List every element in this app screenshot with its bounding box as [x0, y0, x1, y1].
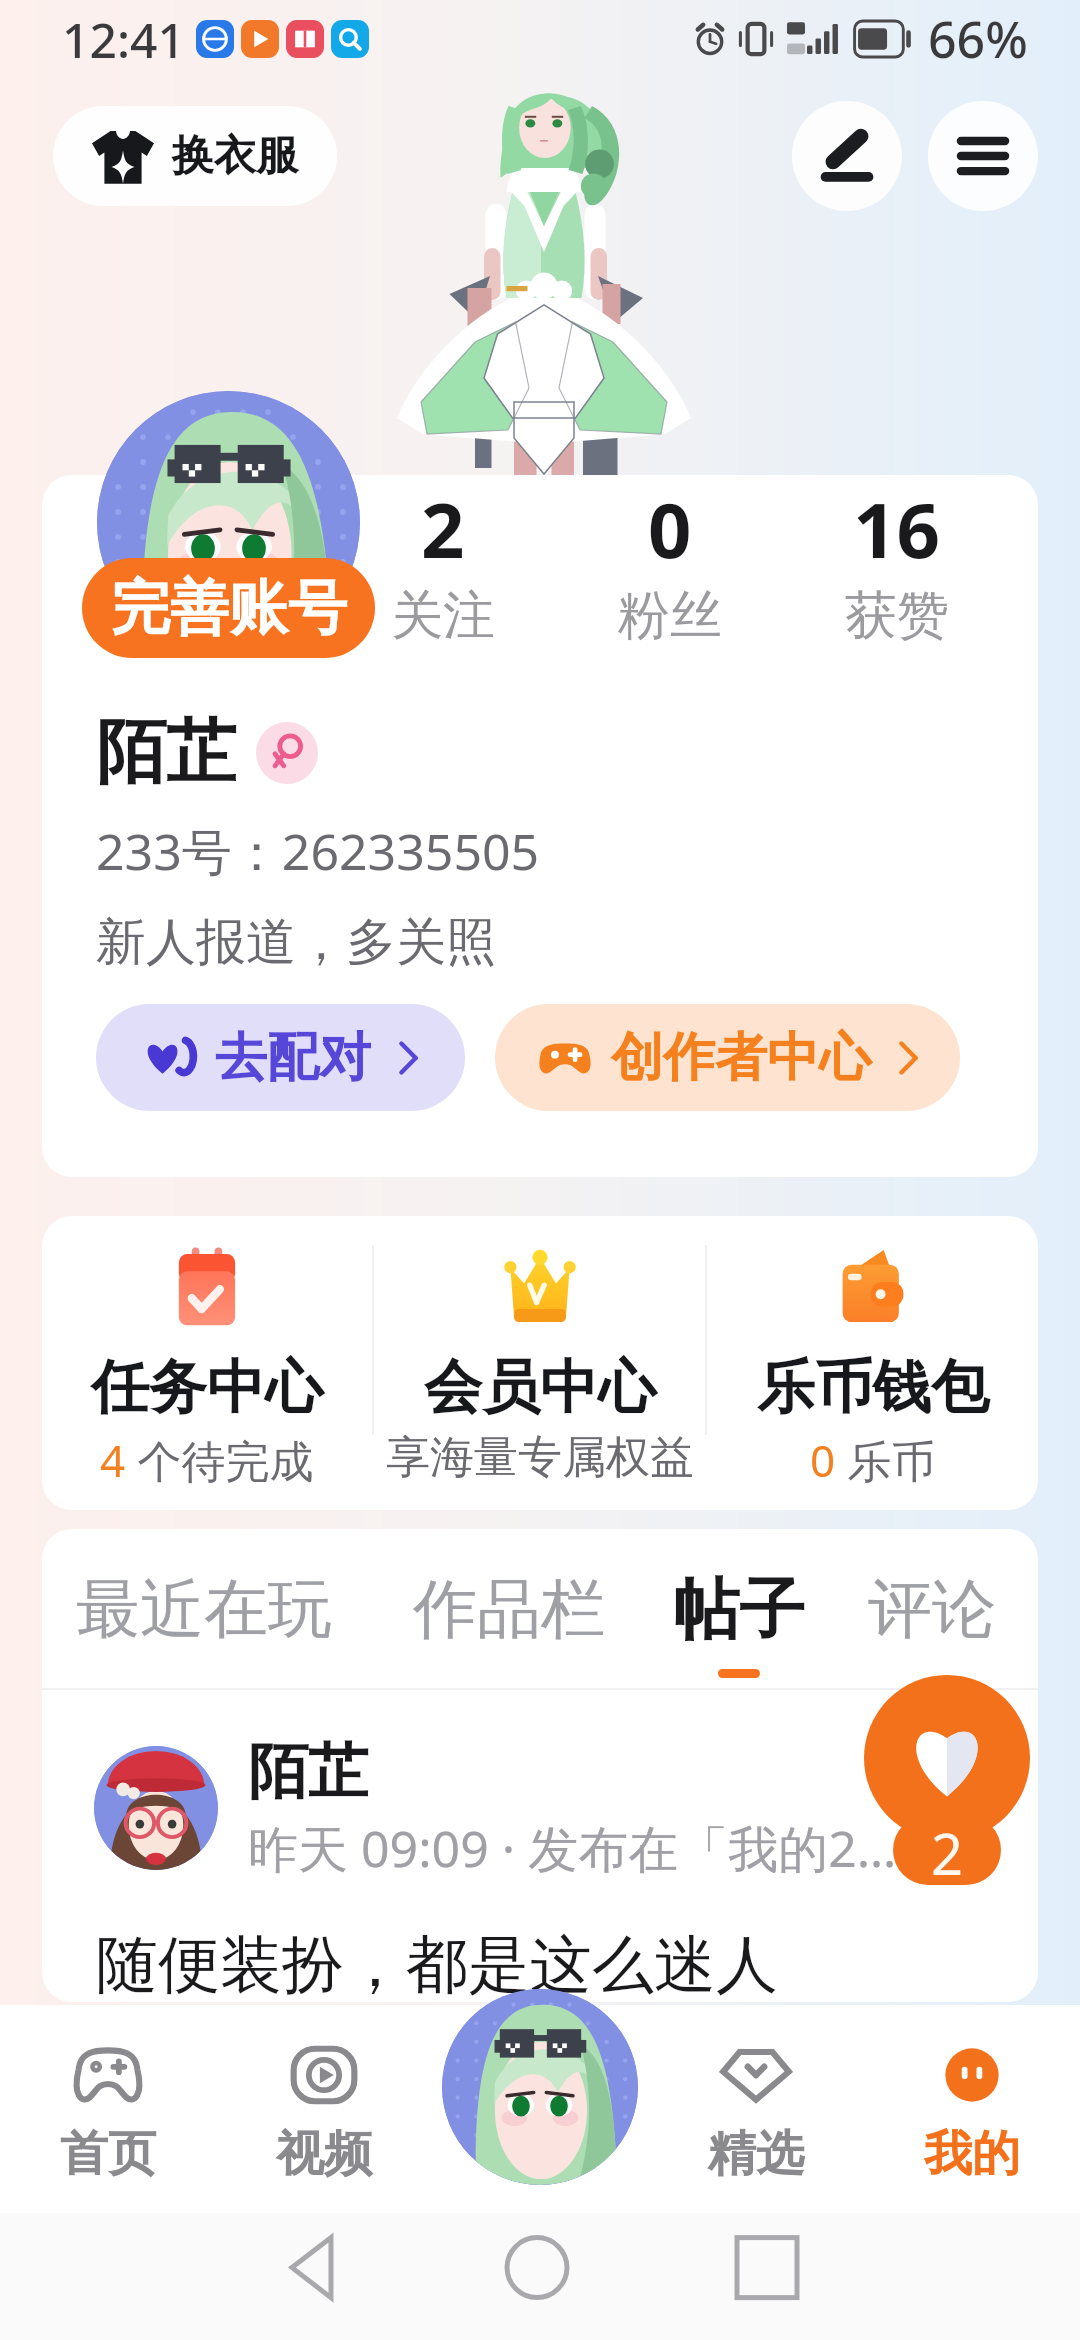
button[interactable]: 帖子	[609, 1566, 869, 1652]
button[interactable]: 2	[330, 477, 556, 649]
staticText: 关注	[391, 583, 495, 649]
staticText: 陌芷	[96, 709, 236, 797]
staticText: 0	[810, 1430, 836, 1490]
button[interactable]: 我的	[864, 2005, 1080, 2213]
button[interactable]: 任务中心	[42, 1245, 372, 1490]
staticText: 新人报道，多关照	[96, 911, 496, 974]
staticText: 4	[100, 1430, 126, 1490]
staticText: 16	[853, 477, 940, 581]
staticText: 帖子	[673, 1568, 805, 1651]
button[interactable]: Like	[864, 1675, 1030, 1841]
staticText: 233号：262335505	[96, 817, 540, 885]
staticText: 任务中心	[91, 1351, 323, 1424]
staticText: 2	[421, 477, 465, 581]
staticText: 陌芷	[248, 1734, 368, 1810]
button[interactable]: Profile avatar	[97, 391, 360, 654]
staticText: 66%	[928, 5, 1028, 73]
button[interactable]: 创作者中心	[495, 1004, 960, 1111]
staticText: 乐币钱包	[757, 1351, 989, 1424]
staticText: 去配对	[215, 1025, 371, 1091]
button[interactable]: Menu	[928, 101, 1038, 211]
button[interactable]: Dress up avatar	[442, 1989, 638, 2185]
staticText: 最近在玩	[76, 1569, 332, 1650]
staticText: 会员中心	[424, 1351, 656, 1424]
staticText: 2	[931, 1815, 964, 1885]
button[interactable]: Edit profile	[792, 101, 902, 211]
staticText: 12:41	[62, 7, 185, 72]
button[interactable]: 完善账号	[82, 558, 375, 658]
staticText: 视频	[276, 2124, 372, 2184]
button[interactable]: 16	[783, 477, 1010, 649]
staticText: 创作者中心	[611, 1025, 871, 1091]
button[interactable]: 会员中心	[374, 1245, 705, 1485]
button[interactable]: 0	[556, 477, 783, 649]
staticText: 首页	[60, 2124, 156, 2184]
staticText: 享海量专属权益	[386, 1430, 694, 1485]
staticText: 作品栏	[413, 1569, 605, 1650]
button[interactable]: 视频	[216, 2005, 432, 2213]
staticText: 换衣服	[172, 130, 298, 183]
button[interactable]: 精选	[648, 2005, 864, 2213]
staticText: 精选	[708, 2124, 804, 2184]
button[interactable]: 首页	[0, 2005, 216, 2213]
staticText: 粉丝	[618, 583, 722, 649]
button[interactable]: 最近在玩	[74, 1566, 334, 1652]
staticText: 完善账号	[111, 571, 347, 645]
button[interactable]: 乐币钱包	[707, 1245, 1038, 1490]
button[interactable]: 去配对	[96, 1004, 465, 1111]
staticText: 昨天 09:09 · 发布在「我的2…	[248, 1814, 897, 1882]
button[interactable]: 换衣服	[53, 106, 337, 206]
staticText: 获赞	[845, 583, 949, 649]
staticText: 个待完成	[126, 1430, 314, 1490]
staticText: 我的	[924, 2124, 1020, 2184]
staticText: 随便装扮，都是这么迷人	[96, 1926, 778, 2002]
staticText: 评论	[868, 1569, 996, 1650]
button[interactable]: 评论	[802, 1566, 1038, 1652]
staticText: 乐币	[836, 1430, 936, 1490]
button[interactable]: 作品栏	[379, 1566, 639, 1652]
staticText: 0	[648, 477, 692, 581]
